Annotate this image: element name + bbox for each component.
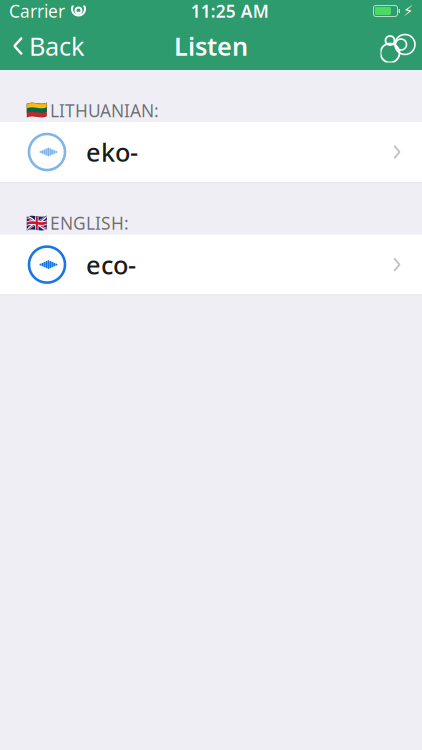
staticText: eko- bbox=[86, 135, 138, 169]
staticText: ENGLISH: bbox=[50, 212, 129, 235]
staticText: 🇱🇹 bbox=[26, 101, 48, 120]
staticText: ⚡︎ bbox=[403, 3, 413, 19]
staticText: LITHUANIAN: bbox=[50, 99, 159, 122]
staticText: 🇬🇧 bbox=[26, 213, 48, 233]
staticText: 11:25 AM bbox=[191, 0, 269, 22]
button[interactable]: Play Lithuanian pronunciation of eko- bbox=[0, 122, 422, 183]
button[interactable]: Pronunciation settings bbox=[380, 25, 422, 67]
button[interactable]: Play English pronunciation of eco- bbox=[0, 235, 422, 295]
staticText: Listen bbox=[174, 29, 248, 63]
button[interactable]: Back bbox=[0, 21, 85, 71]
staticText: Carrier bbox=[9, 0, 65, 22]
staticText: Back bbox=[29, 29, 85, 63]
staticText: eco- bbox=[86, 248, 136, 281]
